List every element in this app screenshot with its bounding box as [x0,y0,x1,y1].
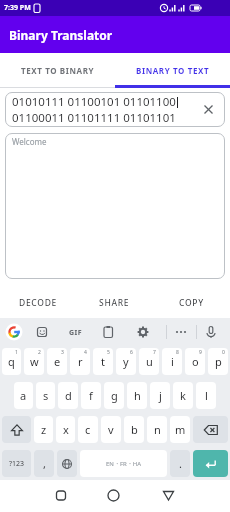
staticText: COPY [179,297,204,309]
staticText: 4 [84,349,87,356]
staticText: k [180,388,186,403]
staticText: r [78,354,83,369]
staticText: d [65,388,72,403]
button[interactable]: x [56,416,75,443]
button[interactable] [57,450,77,477]
staticText: DECODE [19,297,57,309]
button[interactable]: 01010111 01100101 01101100 [5,92,225,127]
staticText: 7:39 PM [4,3,31,13]
button[interactable]: t [93,348,113,375]
staticText: 1 [15,349,18,356]
button[interactable]: l [196,382,216,409]
staticText: m [175,422,186,437]
staticText: Binary Translator [9,27,113,43]
staticText: , [43,456,46,471]
staticText: a [20,388,27,403]
button[interactable]: p [208,348,228,375]
button[interactable]: n [147,416,167,443]
staticText: h [134,388,141,403]
button[interactable] [193,450,228,477]
staticText: j [159,388,162,403]
staticText: ?123 [9,459,25,469]
button[interactable]: COPY [153,287,230,318]
button[interactable] [193,416,228,443]
staticText: 01100011 01101111 01101101 [12,110,176,126]
staticText: 9 [199,349,202,356]
button[interactable]: ?123 [2,450,31,477]
staticText: p [215,354,222,369]
staticText: 5 [107,349,110,356]
staticText: b [131,422,138,437]
staticText: GIF [69,328,83,338]
button[interactable]: w [24,348,44,375]
staticText: c [85,422,91,437]
staticText: y [123,354,129,369]
staticText: l [205,388,208,403]
staticText: BINARY TO TEXT [136,65,210,76]
staticText: t [101,354,105,369]
staticText: n [154,422,161,437]
button[interactable] [153,480,230,512]
staticText: 0 [222,349,225,356]
staticText: TEXT TO BINARY [21,65,95,76]
staticText: u [146,354,153,369]
button[interactable] [0,480,76,512]
button[interactable]: r [70,348,90,375]
staticText: 2 [38,349,41,356]
button[interactable]: f [81,382,101,409]
staticText: o [192,354,199,369]
button[interactable]: DECODE [0,287,76,318]
button[interactable]: e [47,348,67,375]
button[interactable]: v [101,416,121,443]
staticText: Welcome [12,136,47,147]
button[interactable] [2,416,31,443]
button[interactable]: u [139,348,159,375]
staticText: SHARE [99,297,130,309]
button[interactable]: SHARE [76,287,153,318]
staticText: i [171,354,174,369]
staticText: 3 [61,349,64,356]
staticText: f [89,388,93,403]
button[interactable]: a [14,382,33,409]
button[interactable]: d [58,382,78,409]
button[interactable]: o [185,348,205,375]
staticText: . [179,456,182,471]
button[interactable]: h [127,382,147,409]
button[interactable] [76,480,153,512]
staticText: w [30,354,39,369]
button[interactable]: s [36,382,55,409]
staticText: s [43,388,49,403]
button[interactable]: BINARY TO TEXT [115,53,230,88]
staticText: 8 [176,349,179,356]
staticText: z [41,422,47,437]
staticText: 6 [130,349,133,356]
button[interactable]: m [170,416,190,443]
button[interactable]: TEXT TO BINARY [0,53,115,88]
button[interactable]: , [34,450,54,477]
staticText: v [108,422,114,437]
button[interactable]: c [78,416,98,443]
staticText: EN・FR・HA [106,460,142,468]
button[interactable]: q [2,348,21,375]
button[interactable]: b [124,416,144,443]
button[interactable]: z [34,416,53,443]
staticText: 7 [153,349,156,356]
staticText: q [8,354,15,369]
staticText: x [63,422,69,437]
button[interactable]: . [170,450,190,477]
button[interactable]: j [150,382,170,409]
staticText: g [111,388,118,403]
button[interactable]: i [162,348,182,375]
staticText: e [54,354,61,369]
button[interactable]: y [116,348,136,375]
button[interactable]: EN・FR・HA [80,450,167,477]
staticText: 01010111 01100101 01101100 [12,94,176,110]
button[interactable]: g [104,382,124,409]
button[interactable]: k [173,382,193,409]
